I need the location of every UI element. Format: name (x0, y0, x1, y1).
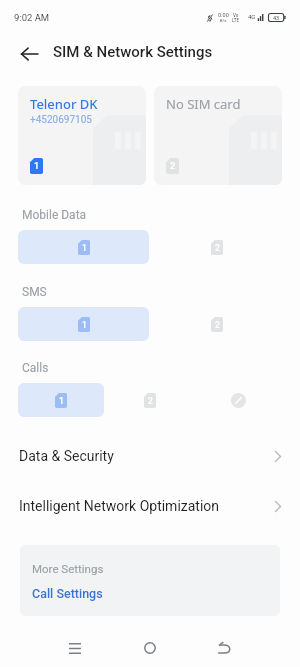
staticText: 1 (82, 320, 87, 330)
button[interactable]: SIM 1 (18, 230, 149, 264)
button[interactable]: Ask every time (195, 383, 282, 417)
staticText: 1 (34, 161, 40, 172)
staticText: LTE (232, 18, 240, 23)
staticText: 43 (273, 15, 280, 21)
staticText: No SIM card (166, 95, 241, 113)
button[interactable]: Intelligent Network Optimization (0, 481, 300, 531)
button[interactable]: Back (187, 629, 262, 667)
button[interactable]: Home (112, 629, 187, 667)
staticText: SIM & Network Settings (53, 43, 213, 61)
button[interactable]: Recent apps (37, 629, 112, 667)
button[interactable]: No SIM card (154, 86, 282, 185)
button[interactable]: SIM 1 (18, 307, 149, 341)
staticText: Vo (233, 13, 239, 18)
staticText: B/s (220, 18, 227, 23)
staticText: +4520697105 (30, 114, 92, 126)
button[interactable]: SIM 2 (151, 307, 282, 341)
staticText: Calls (22, 361, 49, 375)
button[interactable]: Telenor DK (18, 86, 146, 185)
button[interactable]: Back (14, 37, 44, 67)
staticText: Data & Security (19, 448, 114, 464)
staticText: More Settings (32, 562, 104, 575)
staticText: SMS (22, 285, 47, 299)
staticText: Mobile Data (22, 208, 87, 222)
staticText: Telenor DK (30, 95, 98, 113)
staticText: 2 (215, 320, 220, 330)
staticText: 0.00 (218, 12, 229, 18)
button[interactable]: SIM 2 (106, 383, 193, 417)
staticText: 1 (82, 243, 87, 253)
button[interactable]: SIM 2 (151, 230, 282, 264)
button[interactable]: Data & Security (0, 431, 300, 481)
staticText: 9:02 AM (14, 12, 50, 23)
button[interactable]: More Settings (20, 545, 280, 616)
staticText: 1 (59, 396, 64, 406)
staticText: Intelligent Network Optimization (19, 498, 220, 514)
staticText: 2 (148, 396, 153, 406)
staticText: Call Settings (32, 586, 103, 601)
staticText: 4G (248, 13, 256, 20)
staticText: 2 (170, 161, 176, 172)
button[interactable]: SIM 1 (18, 383, 104, 417)
staticText: 2 (215, 243, 220, 253)
